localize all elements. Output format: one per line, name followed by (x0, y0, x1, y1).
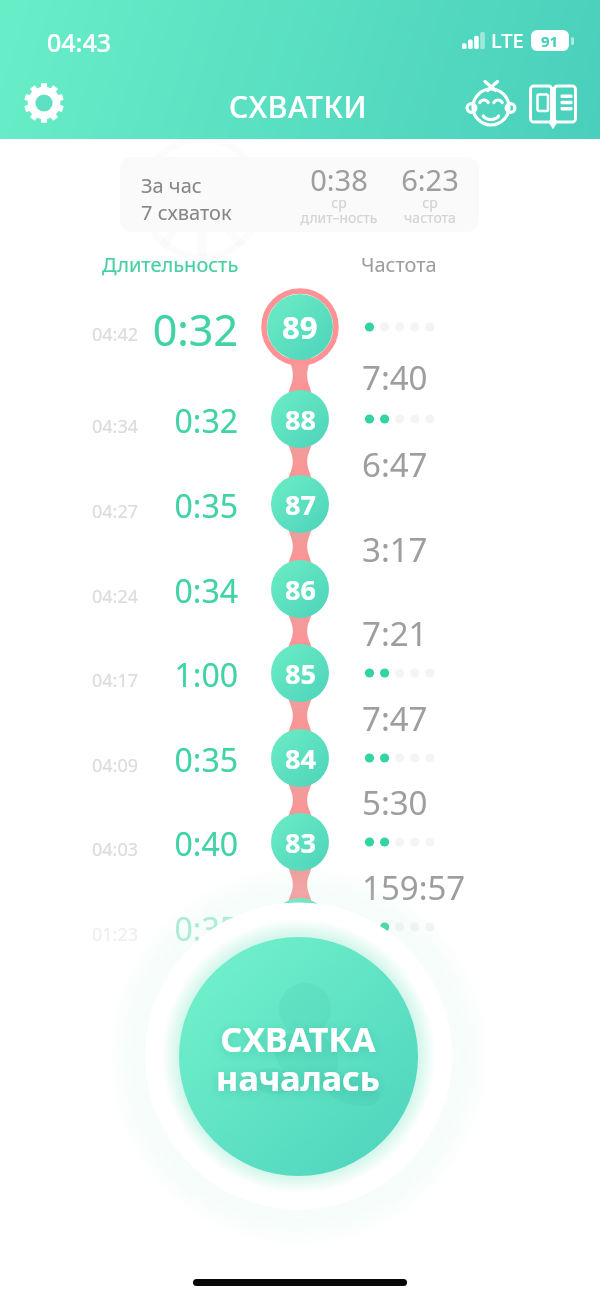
staticText: 83 (285, 824, 316, 861)
staticText: 04:42 (92, 322, 139, 347)
staticText: 3:17 (362, 527, 428, 572)
button[interactable]: 83 (271, 813, 329, 871)
staticText: 87 (285, 486, 316, 523)
staticText: 0:35 (128, 738, 238, 782)
staticText: 0:40 (128, 822, 238, 866)
button[interactable]: 82 (271, 898, 329, 956)
staticText: 0:32 (128, 300, 238, 359)
staticText: 04:34 (92, 414, 139, 439)
staticText: 0:38 (289, 160, 389, 199)
staticText: 1:00 (128, 653, 238, 697)
staticText: 6:23 (380, 160, 479, 199)
staticText: 04:17 (92, 668, 139, 693)
staticText: 0:32 (128, 399, 238, 443)
button[interactable]: 85 (271, 644, 329, 702)
staticText: ср (289, 193, 389, 212)
button[interactable]: 86 (271, 560, 329, 618)
button[interactable]: 84 (271, 729, 329, 787)
staticText: ср (380, 193, 479, 212)
button[interactable]: Guide (524, 75, 582, 133)
button[interactable]: 87 (271, 475, 329, 533)
staticText: За час (141, 172, 202, 199)
button[interactable]: 89 (267, 294, 333, 360)
staticText: 04:43 (47, 25, 112, 59)
staticText: 7:21 (362, 611, 428, 656)
staticText: 6:47 (362, 442, 428, 487)
staticText: 91 (541, 31, 559, 51)
button[interactable]: СХВАТКА (179, 937, 418, 1176)
staticText: 7:40 (362, 355, 428, 400)
staticText: 0:34 (128, 569, 238, 613)
button[interactable]: Baby profile (462, 77, 520, 135)
button[interactable]: Settings (15, 74, 73, 132)
staticText: СХВАТКА (208, 1016, 388, 1062)
staticText: 01:23 (92, 922, 139, 947)
staticText: LTE (491, 27, 524, 54)
staticText: 04:03 (92, 837, 139, 862)
staticText: 84 (285, 740, 316, 777)
staticText: 159:57 (362, 865, 466, 910)
staticText: 88 (285, 401, 316, 438)
staticText: 0:35 (128, 484, 238, 528)
staticText: 04:27 (92, 499, 139, 524)
button[interactable]: За час (120, 157, 479, 232)
staticText: 7:47 (362, 696, 428, 741)
staticText: 04:09 (92, 753, 139, 778)
staticText: 89 (282, 306, 318, 348)
staticText: частота (380, 208, 479, 227)
staticText: 04:24 (92, 584, 139, 609)
staticText: 85 (285, 655, 316, 692)
button[interactable]: 88 (271, 390, 329, 448)
staticText: длит–ность (289, 208, 389, 227)
staticText: СХВАТКИ (229, 86, 368, 127)
staticText: 0:35 (128, 907, 238, 951)
staticText: 82 (285, 909, 316, 946)
button[interactable]: Длительность (102, 251, 239, 278)
staticText: 5:30 (362, 780, 428, 825)
staticText: 7 схваток (141, 199, 232, 226)
staticText: 86 (285, 571, 316, 608)
staticText: началась (208, 1055, 388, 1101)
button[interactable]: Частота (361, 251, 437, 278)
